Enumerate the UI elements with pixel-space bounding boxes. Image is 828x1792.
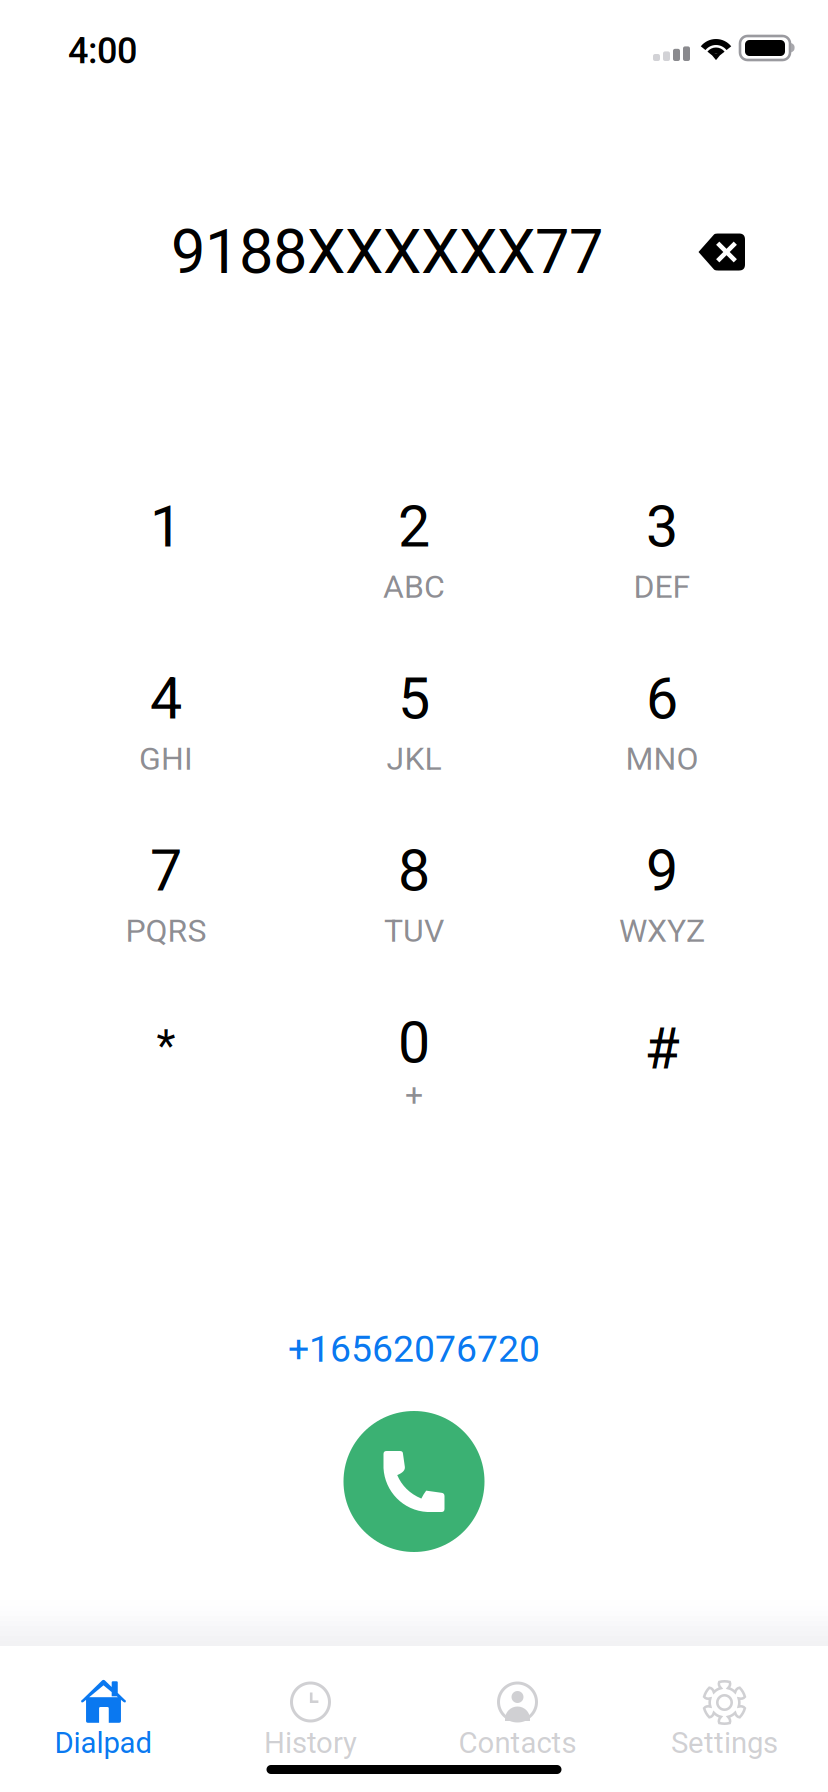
staticText: 6: [646, 665, 678, 733]
staticText: 4: [150, 665, 182, 733]
staticText: JKL: [386, 740, 441, 777]
staticText: 8: [398, 837, 430, 905]
staticText: 7: [150, 837, 182, 905]
button[interactable]: 1: [42, 506, 290, 606]
staticText: +: [405, 1076, 423, 1113]
button[interactable]: +16562076720: [0, 1329, 828, 1369]
staticText: GHI: [139, 740, 193, 777]
staticText: 9188XXXXXX77: [171, 216, 603, 288]
staticText: Settings: [671, 1726, 778, 1760]
staticText: MNO: [625, 740, 698, 777]
button[interactable]: 3: [538, 506, 786, 606]
button[interactable]: 7: [42, 850, 290, 950]
button[interactable]: Call: [343, 1411, 484, 1552]
staticText: PQRS: [125, 912, 206, 949]
button[interactable]: 5: [290, 678, 538, 778]
staticText: TUV: [384, 912, 444, 949]
staticText: +16562076720: [288, 1327, 540, 1371]
staticText: ABC: [383, 568, 445, 605]
staticText: Contacts: [458, 1726, 576, 1760]
staticText: WXYZ: [619, 912, 705, 949]
button[interactable]: Delete: [676, 215, 766, 289]
staticText: 9: [646, 837, 678, 905]
staticText: 1: [150, 493, 182, 561]
button[interactable]: Settings: [621, 1680, 828, 1792]
staticText: Dialpad: [54, 1726, 152, 1760]
staticText: *: [156, 1020, 175, 1072]
button[interactable]: 4: [42, 678, 290, 778]
staticText: 2: [398, 493, 430, 561]
button[interactable]: *: [42, 1022, 290, 1122]
staticText: 4:00: [68, 30, 137, 72]
button[interactable]: 0: [290, 1022, 538, 1122]
button[interactable]: 9: [538, 850, 786, 950]
button[interactable]: 6: [538, 678, 786, 778]
staticText: 0: [398, 1009, 430, 1077]
button[interactable]: Contacts: [414, 1680, 621, 1792]
staticText: 3: [646, 493, 678, 561]
button[interactable]: 2: [290, 506, 538, 606]
staticText: 5: [398, 665, 430, 733]
button[interactable]: #: [538, 1022, 786, 1122]
button[interactable]: History: [207, 1680, 414, 1792]
staticText: DEF: [633, 568, 690, 605]
staticText: History: [264, 1726, 357, 1760]
staticText: #: [644, 1015, 679, 1083]
button[interactable]: 8: [290, 850, 538, 950]
button[interactable]: Dialpad: [0, 1680, 207, 1792]
